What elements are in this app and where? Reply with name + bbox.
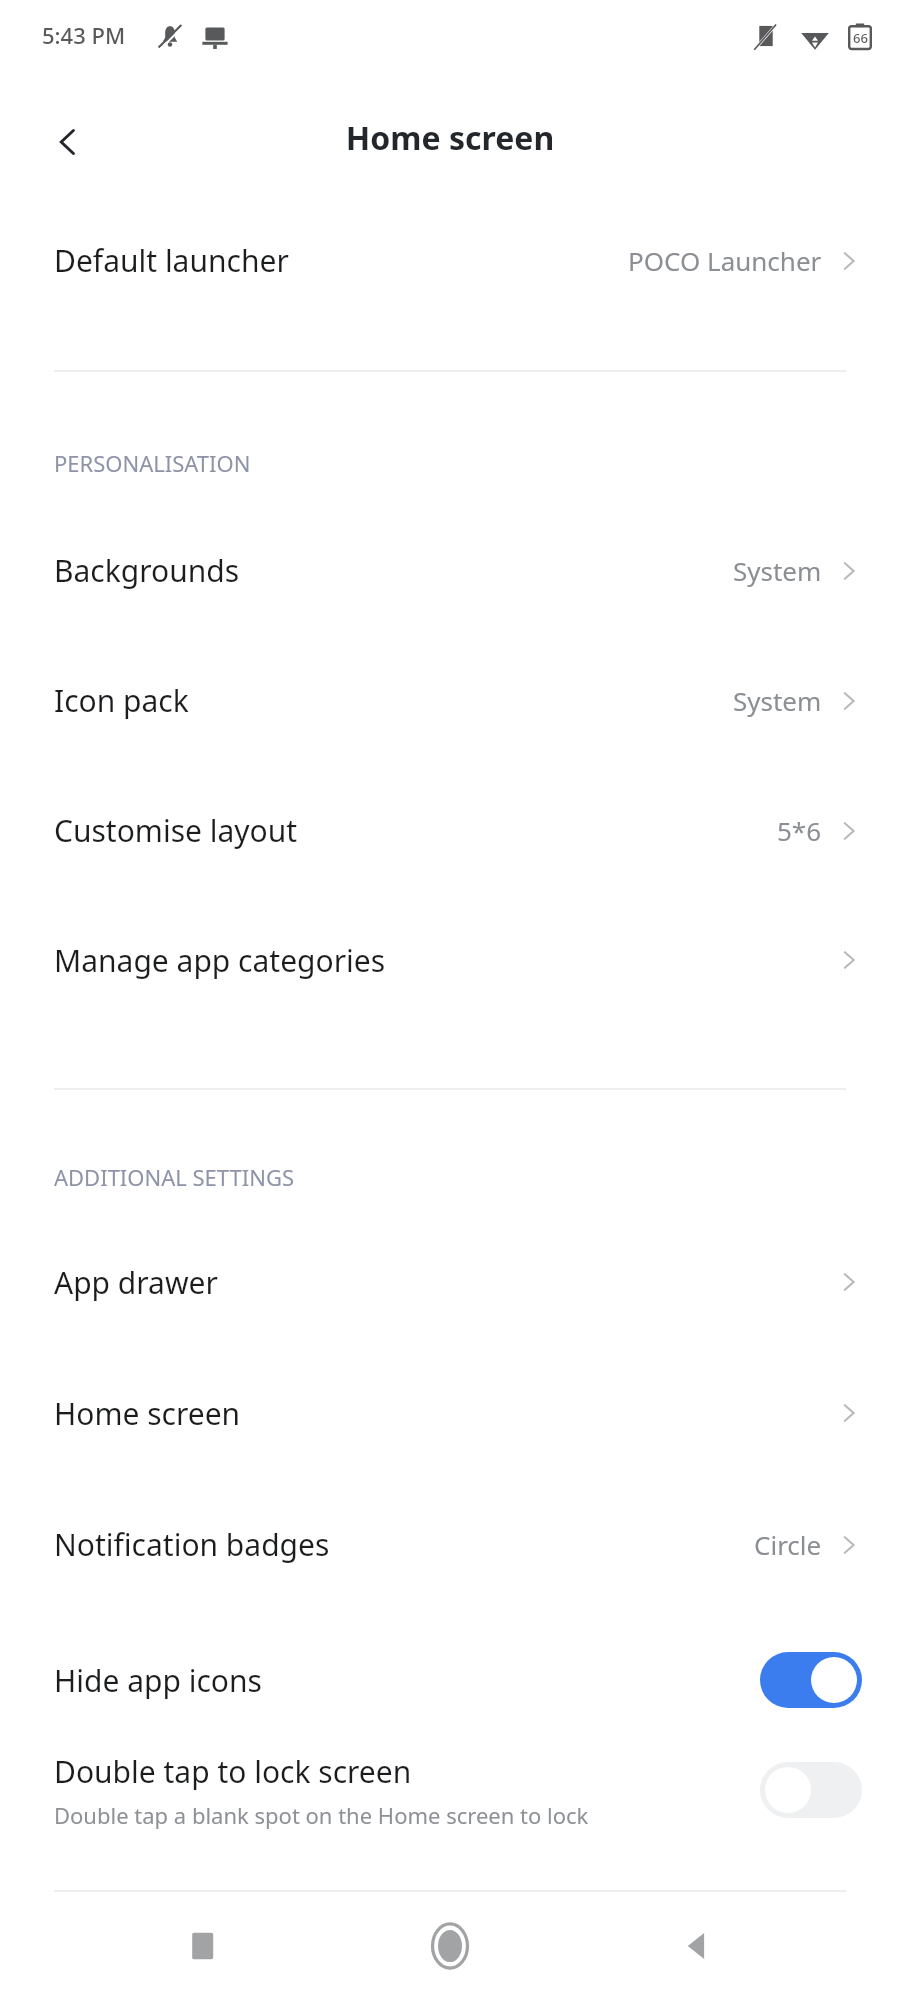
staticText: Backgrounds — [54, 550, 240, 591]
button[interactable]: App drawer — [0, 1232, 900, 1332]
staticText: Home screen — [54, 1393, 241, 1434]
staticText: Notification badges — [54, 1524, 330, 1565]
staticText: Double tap to lock screen — [54, 1751, 412, 1792]
button[interactable]: Default launcher — [0, 210, 900, 310]
staticText: Home screen — [0, 116, 900, 160]
staticText: App drawer — [54, 1262, 218, 1303]
button[interactable]: Double tap to lock screen — [0, 1735, 900, 1845]
button[interactable]: Back — [653, 1901, 743, 1991]
staticText: 5:43 PM — [42, 20, 126, 50]
button[interactable]: Icon pack — [0, 650, 900, 750]
staticText: ADDITIONAL SETTINGS — [54, 1162, 295, 1192]
staticText: Hide app icons — [54, 1660, 262, 1701]
button[interactable]: Toggle off — [760, 1762, 862, 1818]
staticText: System — [733, 683, 822, 718]
staticText: Manage app categories — [54, 940, 386, 981]
staticText: Double tap a blank spot on the Home scre… — [54, 1800, 589, 1830]
staticText: Customise layout — [54, 810, 298, 851]
staticText: Circle — [754, 1527, 822, 1562]
staticText: POCO Launcher — [628, 243, 822, 278]
button[interactable]: Home screen — [0, 1363, 900, 1463]
button[interactable]: Manage app categories — [0, 910, 900, 1010]
button[interactable]: Recents — [158, 1901, 248, 1991]
staticText: Default launcher — [54, 240, 289, 281]
button[interactable]: Back — [26, 100, 110, 184]
staticText: PERSONALISATION — [54, 448, 251, 478]
staticText: Icon pack — [54, 680, 189, 721]
button[interactable]: Backgrounds — [0, 520, 900, 620]
button[interactable]: Home — [405, 1901, 495, 1991]
button[interactable]: Customise layout — [0, 780, 900, 880]
button[interactable]: Hide app icons — [0, 1625, 900, 1735]
staticText: 5*6 — [777, 813, 822, 848]
staticText: 66 — [853, 29, 868, 47]
button[interactable]: Notification badges — [0, 1494, 900, 1594]
button[interactable]: Toggle on — [760, 1652, 862, 1708]
staticText: System — [733, 553, 822, 588]
